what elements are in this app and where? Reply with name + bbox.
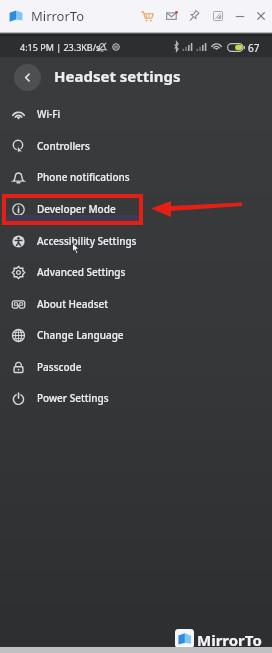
staticText: Phone notifications [37, 170, 130, 184]
staticText: 67 [248, 41, 260, 55]
button[interactable]: Developer Mode [0, 193, 272, 225]
button[interactable]: Back [14, 64, 41, 91]
staticText: Passcode [37, 360, 82, 374]
button[interactable]: Store [137, 6, 157, 26]
button[interactable]: Change Language [0, 319, 272, 351]
button[interactable]: Restore [208, 6, 228, 26]
staticText: Wi-Fi [37, 107, 61, 121]
button[interactable]: Mail [162, 6, 182, 26]
staticText: Controllers [37, 139, 90, 153]
button[interactable]: Close [251, 6, 271, 26]
button[interactable]: Passcode [0, 351, 272, 383]
button[interactable]: About Headset [0, 288, 272, 320]
staticText: Accessibility Settings [37, 234, 137, 248]
button[interactable]: Advanced Settings [0, 256, 272, 288]
button[interactable]: Power Settings [0, 382, 272, 414]
staticText: Change Language [37, 328, 124, 342]
staticText: About Headset [37, 297, 109, 311]
staticText: MirrorTo [31, 7, 85, 25]
staticText: 4:15 PM | 23.3KB/s [20, 41, 101, 53]
button[interactable]: Phone notifications [0, 161, 272, 193]
button[interactable]: Wi-Fi [0, 98, 272, 130]
staticText: MirrorTo [197, 630, 262, 650]
button[interactable]: Accessibility Settings [0, 225, 272, 257]
button[interactable]: Controllers [0, 130, 272, 162]
staticText: Advanced Settings [37, 265, 126, 279]
button[interactable]: Pin [184, 6, 204, 26]
staticText: Headset settings [54, 66, 181, 86]
staticText: Developer Mode [37, 202, 116, 216]
staticText: Power Settings [37, 391, 109, 405]
button[interactable]: Minimize [230, 6, 250, 26]
